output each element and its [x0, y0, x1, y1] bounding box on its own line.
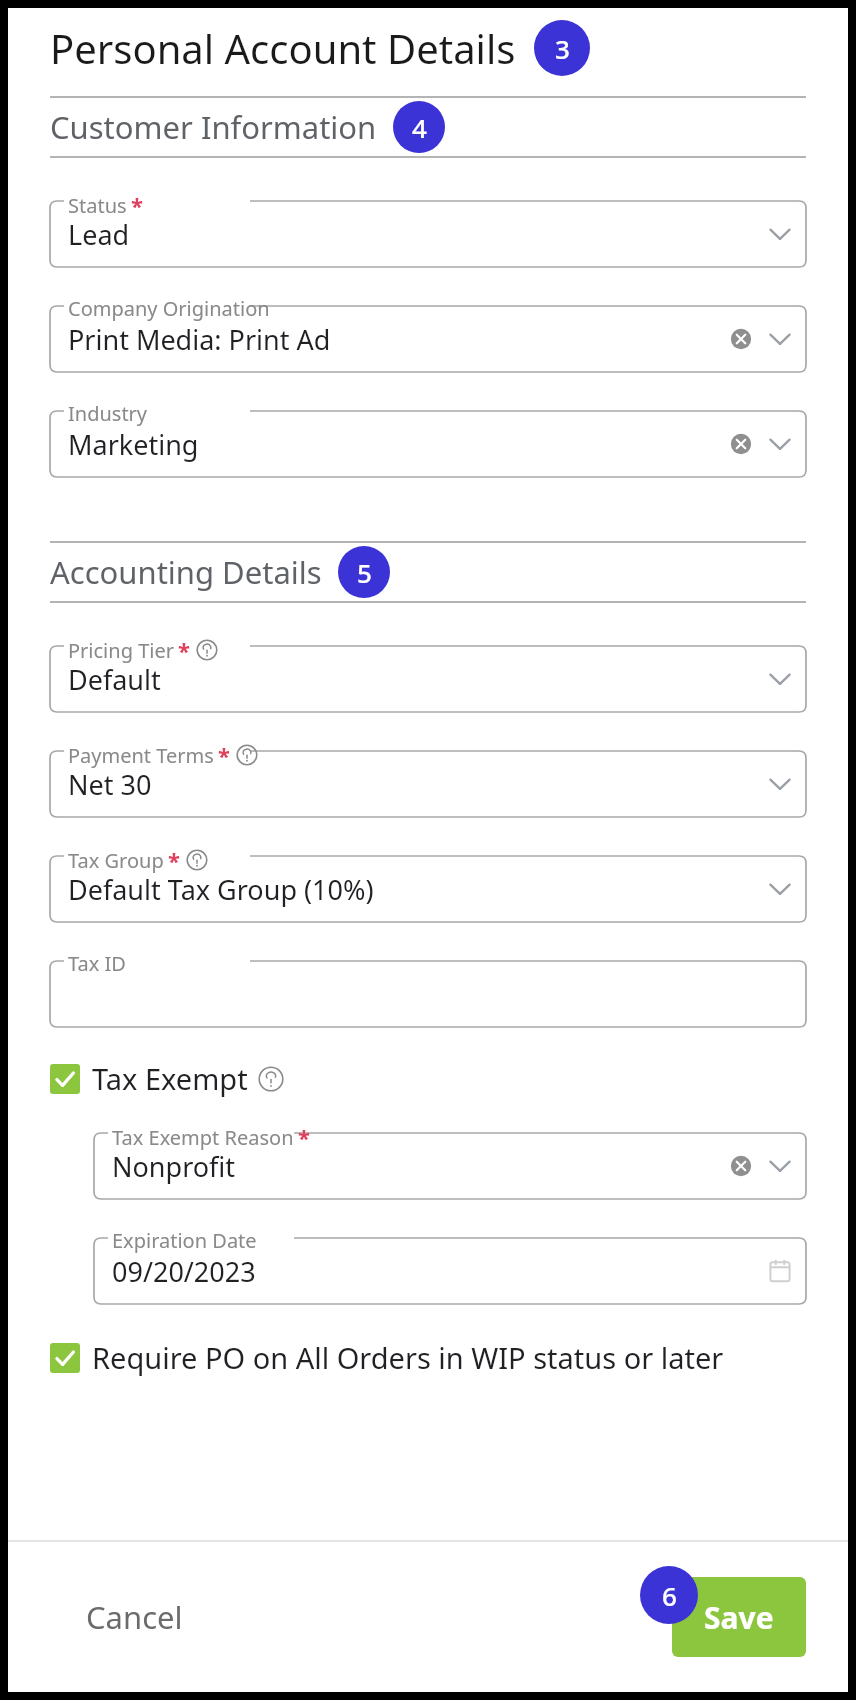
button[interactable]: Checked — [50, 1059, 284, 1098]
staticText: 4 — [412, 110, 427, 145]
button[interactable]: Cancel — [68, 1584, 201, 1650]
staticText: 5 — [357, 555, 372, 590]
staticText: Default Tax Group (10%) — [68, 871, 764, 908]
button[interactable]: Clear — [728, 431, 754, 457]
staticText: Industry — [68, 400, 148, 427]
button[interactable]: Clear — [728, 1153, 754, 1179]
staticText: * — [168, 845, 180, 875]
button[interactable]: Save — [672, 1577, 806, 1657]
staticText: 09/20/2023 — [112, 1253, 764, 1290]
staticText: Nonprofit — [112, 1148, 728, 1185]
button[interactable]: Clear — [728, 326, 754, 352]
staticText: Customer Information — [50, 106, 377, 148]
staticText: * — [178, 635, 190, 665]
staticText: Expiration Date — [112, 1227, 257, 1254]
staticText: Net 30 — [68, 766, 764, 803]
button[interactable]: Checked — [50, 1343, 80, 1373]
staticText: Payment Terms — [68, 742, 214, 769]
staticText: Save — [704, 1597, 774, 1638]
staticText: 3 — [555, 31, 570, 66]
staticText: Require PO on All Orders in WIP status o… — [92, 1338, 724, 1377]
staticText: * — [131, 190, 143, 220]
button[interactable]: Checked — [50, 1064, 80, 1094]
staticText: Pricing Tier — [68, 637, 174, 664]
staticText: * — [298, 1122, 310, 1152]
staticText: Personal Account Details — [50, 21, 516, 75]
staticText: Lead — [68, 216, 764, 253]
staticText: Status — [68, 192, 127, 219]
staticText: Default — [68, 661, 764, 698]
staticText: Tax Group — [68, 847, 164, 874]
button[interactable]: Checked — [50, 1338, 724, 1377]
staticText: Cancel — [86, 1596, 183, 1638]
staticText: Tax ID — [68, 950, 126, 977]
staticText: Accounting Details — [50, 551, 322, 593]
staticText: Company Origination — [68, 295, 270, 322]
staticText: 6 — [662, 1578, 677, 1613]
staticText: Print Media: Print Ad — [68, 321, 728, 358]
staticText: Marketing — [68, 426, 728, 463]
staticText: Tax Exempt Reason — [112, 1124, 294, 1151]
staticText: * — [218, 740, 230, 770]
staticText: Tax Exempt — [92, 1059, 248, 1098]
